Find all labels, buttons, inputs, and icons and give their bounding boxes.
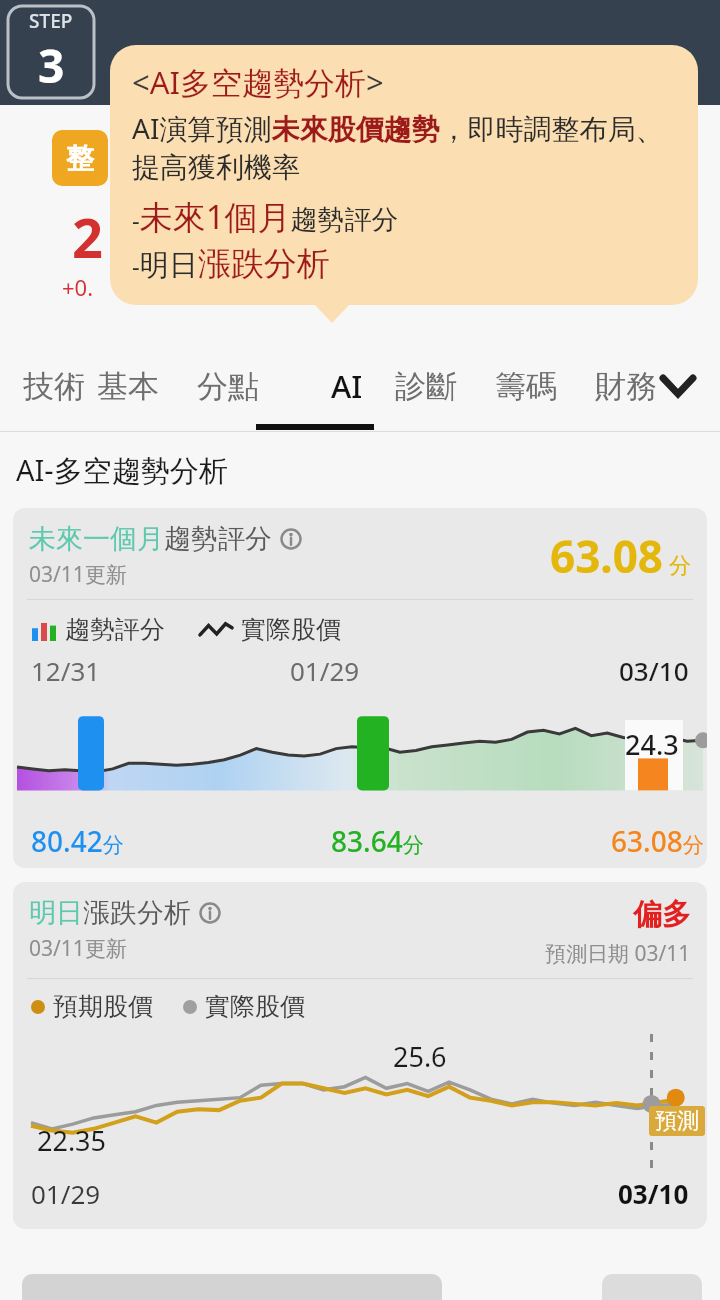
staticText: 01/29 <box>31 1176 101 1211</box>
button[interactable]: 未來一個月趨勢評分 <box>13 508 707 868</box>
staticText: 未來一個月趨勢評分 <box>29 522 272 556</box>
staticText: 25.6 <box>393 1038 447 1075</box>
staticText: 03/10 <box>619 653 689 688</box>
staticText: 籌碼 <box>495 367 557 406</box>
staticText: +0. <box>62 272 94 302</box>
staticText: 63.08 <box>550 526 664 586</box>
staticText: 24.3 <box>625 726 679 763</box>
staticText: 2287 <box>320 22 398 68</box>
button[interactable]: 明日漲跌分析 <box>13 882 707 1229</box>
button[interactable]: 診斷 <box>376 340 476 432</box>
staticText: <AI多空趨勢分析> <box>132 61 384 103</box>
staticText: -未來1個月趨勢評分 <box>132 194 399 239</box>
button[interactable] <box>602 1274 702 1300</box>
button[interactable]: 財務 <box>576 340 676 432</box>
staticText: 明日漲跌分析 <box>29 896 191 930</box>
staticText: 趨勢評分 <box>65 614 165 645</box>
staticText: 分 <box>669 552 691 580</box>
button[interactable]: 技術 <box>4 340 104 432</box>
staticText: 預測 <box>655 1107 699 1135</box>
other: 說明 <box>199 902 221 924</box>
staticText: 基本 <box>97 367 159 406</box>
staticText: 實際股價 <box>241 614 341 645</box>
button[interactable]: STEP <box>6 4 96 100</box>
button[interactable]: 分點 <box>178 340 278 432</box>
other: 說明 <box>280 528 302 550</box>
staticText: AI <box>331 365 363 407</box>
staticText: 12/31 <box>31 653 290 688</box>
staticText: STEP <box>29 8 73 34</box>
staticText: 03/11更新 <box>29 560 127 589</box>
staticText: 預期股價 <box>53 991 153 1022</box>
staticText: -明日漲跌分析 <box>132 243 330 285</box>
staticText: 2 <box>72 200 103 274</box>
staticText: 預測日期 03/11 <box>545 939 691 968</box>
button[interactable]: AI <box>288 340 406 432</box>
staticText: 03/11更新 <box>29 934 127 963</box>
staticText: 技術 <box>23 367 85 406</box>
staticText: 01/29 <box>290 653 360 688</box>
button[interactable]: 展開更多分頁 <box>648 340 708 432</box>
staticText: 80.42分 <box>31 822 124 860</box>
staticText: 63.08分 <box>611 822 704 860</box>
staticText: AI-多空趨勢分析 <box>16 450 228 490</box>
staticText: 診斷 <box>395 367 457 406</box>
staticText: 整 <box>66 141 94 176</box>
staticText: 偏多 <box>633 896 691 933</box>
staticText: 83.64分 <box>331 822 424 860</box>
staticText: AI演算預測未來股價趨勢，即時調整布局、提高獲利機率 <box>132 109 684 186</box>
staticText: 03/10 <box>618 1176 689 1211</box>
staticText: 3 <box>38 34 65 97</box>
button[interactable]: <AI多空趨勢分析> <box>110 45 698 305</box>
staticText: 財務 <box>595 367 657 406</box>
staticText: 22.35 <box>37 1122 107 1159</box>
staticText: 分點 <box>197 367 259 406</box>
button[interactable]: 籌碼 <box>476 340 576 432</box>
staticText: 實際股價 <box>205 991 305 1022</box>
button[interactable]: 基本 <box>78 340 178 432</box>
